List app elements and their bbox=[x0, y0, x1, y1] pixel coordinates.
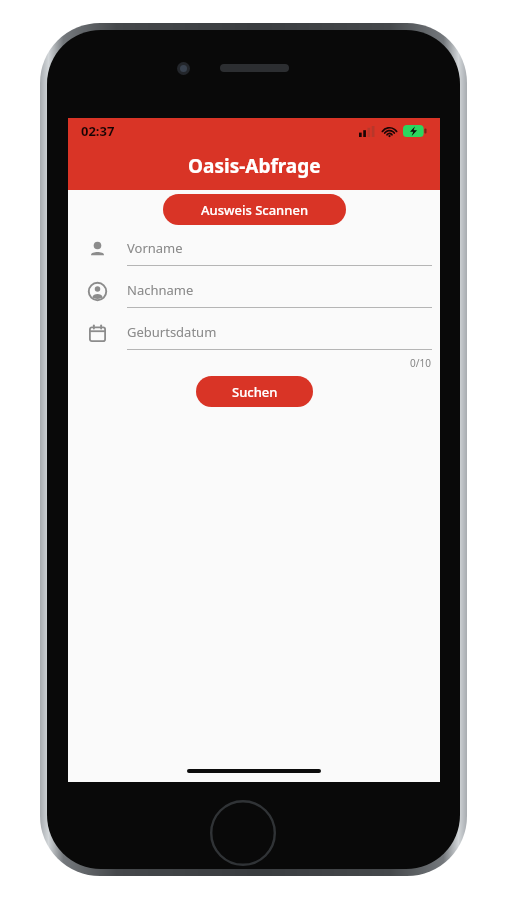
staticText: Suchen bbox=[232, 383, 278, 401]
staticText: Nachname bbox=[127, 281, 194, 299]
button[interactable]: Vorname bbox=[68, 228, 440, 270]
other: Home bbox=[210, 800, 276, 866]
staticText: Vorname bbox=[127, 239, 183, 257]
staticText: Oasis-Abfrage bbox=[188, 153, 321, 179]
button[interactable]: Nachname bbox=[68, 270, 440, 312]
staticText: Geburtsdatum bbox=[127, 323, 217, 341]
button[interactable]: Suchen bbox=[196, 376, 313, 407]
staticText: 02:37 bbox=[81, 122, 115, 140]
staticText: Ausweis Scannen bbox=[201, 201, 309, 219]
button[interactable]: Geburtsdatum bbox=[68, 312, 440, 354]
staticText: 0/10 bbox=[410, 356, 431, 370]
button[interactable]: Ausweis Scannen bbox=[163, 194, 346, 225]
